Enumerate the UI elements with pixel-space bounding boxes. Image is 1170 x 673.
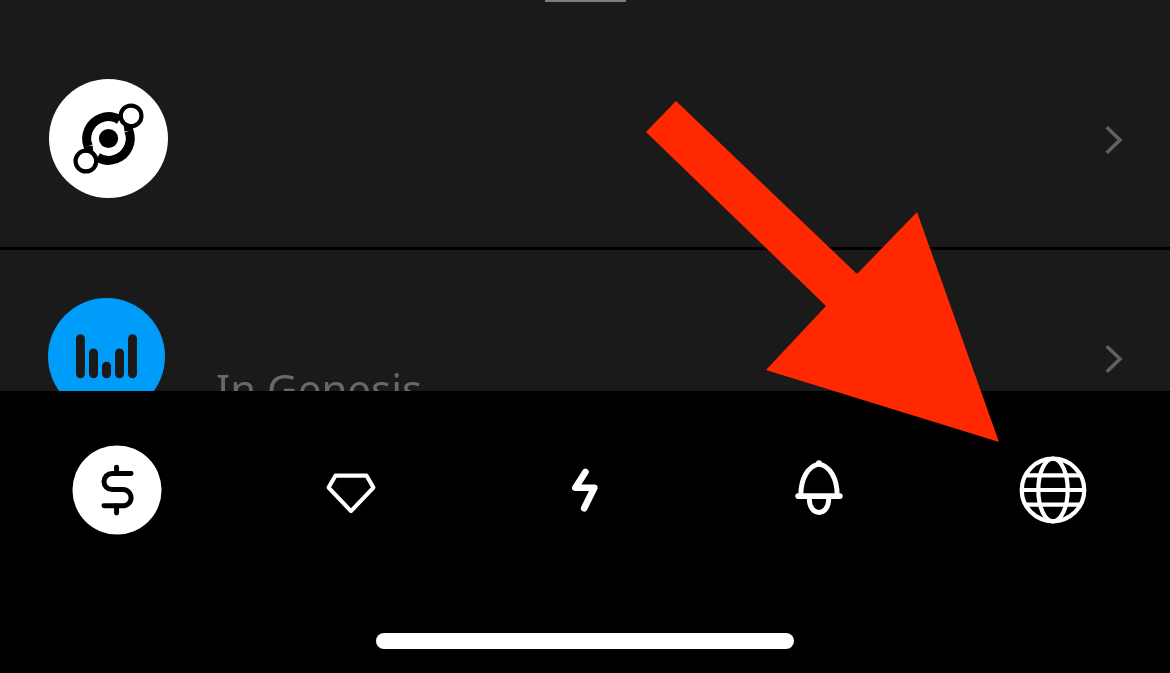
button[interactable]: Wallet <box>0 391 234 588</box>
staticText: In Genesis <box>216 360 423 417</box>
button[interactable]: Browser <box>936 391 1170 588</box>
button[interactable] <box>0 0 1170 247</box>
button[interactable]: Collectibles <box>234 391 468 588</box>
button[interactable]: Activity <box>468 391 702 588</box>
button[interactable]: In Genesis <box>0 250 1170 391</box>
button[interactable]: Notifications <box>702 391 936 588</box>
